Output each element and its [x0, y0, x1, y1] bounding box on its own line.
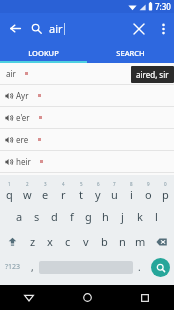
staticText: z [30, 234, 36, 249]
button[interactable]: Shift [0, 229, 24, 254]
button[interactable]: j [114, 204, 131, 229]
staticText: aired, sir [136, 69, 169, 80]
staticText: k [137, 209, 143, 224]
staticText: 0 [164, 181, 167, 187]
staticText: 1 [8, 181, 11, 187]
button[interactable]: 6 [89, 178, 106, 204]
button[interactable]: heir [0, 151, 174, 173]
staticText: air [49, 21, 63, 36]
staticText: 7 [113, 181, 116, 187]
button[interactable]: Back [0, 13, 31, 44]
staticText: r [61, 187, 66, 202]
staticText: t [79, 187, 83, 202]
button[interactable]: a [10, 204, 28, 229]
button[interactable]: . [133, 254, 146, 280]
button[interactable]: Back [0, 285, 58, 310]
button[interactable]: ?123 [0, 254, 26, 280]
staticText: 6 [97, 181, 100, 187]
staticText: a [16, 209, 23, 224]
staticText: e [42, 187, 49, 202]
button[interactable]: k [131, 204, 148, 229]
button[interactable]: h [97, 204, 114, 229]
button[interactable]: 9 [140, 178, 157, 204]
button[interactable]: m [131, 229, 149, 254]
button[interactable]: 5 [72, 178, 89, 204]
staticText: x [47, 234, 53, 249]
staticText: 5 [80, 181, 83, 187]
staticText: ?123 [5, 262, 21, 272]
button[interactable]: s [28, 204, 46, 229]
button[interactable]: 1 [0, 178, 18, 204]
button[interactable]: Clear [126, 16, 152, 42]
button[interactable]: f [63, 204, 80, 229]
button[interactable]: ere [0, 129, 174, 151]
staticText: w [23, 187, 32, 202]
button[interactable]: , [26, 254, 39, 280]
button[interactable]: More options [152, 18, 174, 40]
staticText: e'er [16, 112, 30, 123]
staticText: n [119, 234, 126, 249]
staticText: g [85, 209, 92, 224]
button[interactable]: SEARCH [87, 44, 174, 61]
button[interactable]: LOOKUP [0, 44, 87, 61]
button[interactable]: Ayr [0, 85, 174, 107]
button[interactable]: Home [58, 285, 116, 310]
button[interactable]: air [0, 63, 174, 85]
button[interactable]: 0 [157, 178, 174, 204]
staticText: c [65, 234, 71, 249]
button[interactable]: c [59, 229, 77, 254]
staticText: 7:30 [155, 1, 171, 12]
button[interactable]: z [24, 229, 41, 254]
staticText: h [102, 209, 109, 224]
staticText: y [95, 187, 101, 202]
button[interactable]: 7 [106, 178, 123, 204]
button[interactable]: 2 [18, 178, 36, 204]
staticText: u [111, 187, 118, 202]
staticText: b [101, 234, 108, 249]
staticText: i [130, 187, 133, 202]
staticText: 4 [62, 181, 65, 187]
staticText: m [135, 234, 146, 249]
staticText: 9 [147, 181, 150, 187]
staticText: . [138, 260, 141, 274]
button[interactable]: e'er [0, 107, 174, 129]
staticText: l [155, 209, 158, 224]
staticText: 2 [26, 181, 29, 187]
button[interactable]: d [46, 204, 63, 229]
button[interactable]: Search [151, 258, 170, 277]
button[interactable]: b [95, 229, 113, 254]
button[interactable]: x [41, 229, 59, 254]
staticText: q [6, 187, 13, 202]
staticText: d [51, 209, 58, 224]
staticText: SEARCH [116, 48, 145, 58]
staticText: s [34, 209, 40, 224]
button[interactable]: l [148, 204, 165, 229]
button[interactable]: n [113, 229, 131, 254]
staticText: ere [16, 134, 29, 145]
staticText: f [70, 209, 74, 224]
staticText: p [162, 187, 169, 202]
staticText: LOOKUP [28, 48, 59, 58]
staticText: air [6, 68, 16, 79]
button[interactable]: Backspace [149, 229, 174, 254]
staticText: j [121, 209, 124, 224]
staticText: 8 [130, 181, 133, 187]
button[interactable]: 8 [123, 178, 140, 204]
button[interactable]: v [77, 229, 95, 254]
staticText: , [31, 260, 34, 274]
button[interactable]: 3 [36, 178, 54, 204]
staticText: Ayr [16, 90, 29, 101]
staticText: 3 [44, 181, 47, 187]
button[interactable]: 4 [54, 178, 72, 204]
staticText: o [145, 187, 152, 202]
staticText: v [83, 234, 89, 249]
button[interactable]: g [80, 204, 97, 229]
staticText: heir [16, 156, 31, 167]
button[interactable]: Recents [116, 285, 174, 310]
